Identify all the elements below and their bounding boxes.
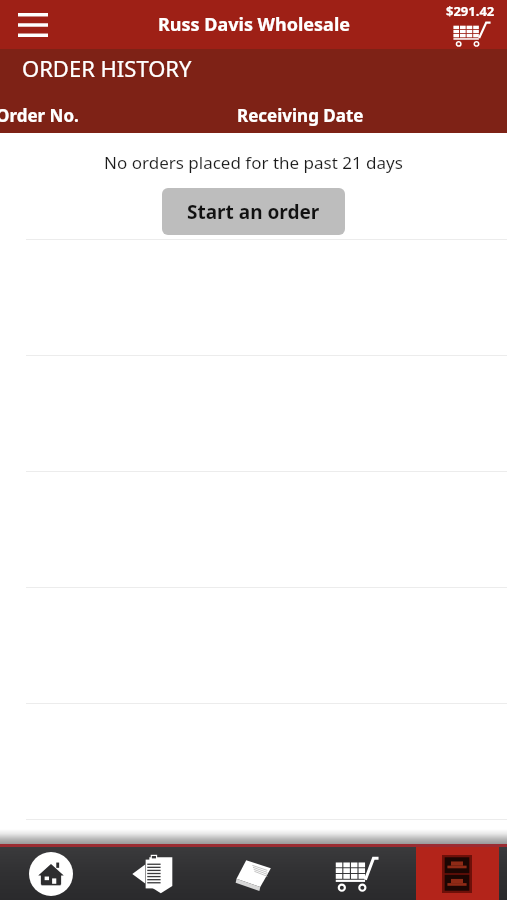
button[interactable]: Catalog bbox=[204, 847, 305, 900]
button[interactable]: Home bbox=[0, 847, 102, 900]
staticText: Start an order bbox=[187, 199, 320, 225]
button[interactable]: Order history bbox=[406, 847, 507, 900]
staticText: Receiving Date bbox=[237, 104, 364, 127]
button[interactable] bbox=[0, 819, 507, 829]
button[interactable]: Start an order bbox=[162, 188, 345, 235]
staticText: No orders placed for the past 21 days bbox=[0, 151, 507, 174]
button[interactable]: Orders bbox=[102, 847, 204, 900]
staticText: Russ Davis Wholesale bbox=[158, 12, 350, 37]
staticText: ORDER HISTORY bbox=[22, 53, 192, 83]
button[interactable]: Open navigation menu bbox=[12, 4, 54, 46]
staticText: Order No. bbox=[0, 104, 79, 127]
button[interactable]: Shopping cart, total $291.42 bbox=[442, 2, 499, 47]
staticText: $291.42 bbox=[446, 2, 495, 20]
button[interactable]: Cart bbox=[305, 847, 406, 900]
